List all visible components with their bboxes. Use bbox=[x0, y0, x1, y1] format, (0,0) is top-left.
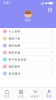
staticText: 意见建议 bbox=[9, 72, 21, 75]
button[interactable]: 用户意见反馈 bbox=[0, 56, 56, 63]
staticText: 我的订单 bbox=[9, 37, 21, 40]
staticText: 分类 bbox=[18, 95, 24, 98]
button[interactable]: 个人资料 bbox=[0, 28, 56, 35]
staticText: 我的收藏 bbox=[9, 44, 21, 47]
button[interactable]: Settings bbox=[47, 6, 54, 13]
button[interactable]: 我的足迹 bbox=[0, 49, 56, 56]
staticText: 我的服务 bbox=[9, 65, 21, 68]
button[interactable]: 分类 bbox=[14, 87, 28, 100]
button[interactable]: 我的服务 bbox=[0, 63, 56, 70]
staticText: 用户意见反馈 bbox=[9, 58, 27, 61]
staticText: 购物车 bbox=[30, 95, 39, 98]
staticText: 我的 bbox=[46, 95, 52, 98]
staticText: 9:41 bbox=[3, 1, 10, 5]
staticText: 我的足迹 bbox=[9, 51, 21, 54]
button[interactable]: 我的收藏 bbox=[0, 42, 56, 49]
button[interactable]: 我的 bbox=[42, 87, 56, 100]
button[interactable]: 我的订单 bbox=[0, 35, 56, 42]
staticText: 个人资料 bbox=[9, 30, 21, 33]
button[interactable]: 购物车 bbox=[28, 87, 42, 100]
button[interactable]: 首页 bbox=[0, 87, 14, 100]
button[interactable]: 意见建议 bbox=[0, 70, 56, 77]
staticText: 首页 bbox=[4, 95, 10, 98]
staticText: 昵称 bbox=[25, 18, 31, 22]
